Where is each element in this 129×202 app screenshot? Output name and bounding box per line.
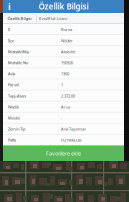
staticText: Favorilere ekle — [46, 150, 81, 157]
staticText: H21V06D2B — [61, 137, 82, 143]
staticText: İl — [8, 27, 10, 32]
button[interactable]: Bilgi — [3, 0, 16, 13]
staticText: Ada — [8, 71, 15, 76]
staticText: Mahalle No — [8, 60, 28, 65]
staticText: Mevkii — [8, 115, 20, 121]
staticText: Pafta — [8, 137, 16, 143]
staticText: 1360 — [61, 71, 69, 76]
button[interactable]: Favorilere ekle — [3, 146, 124, 161]
staticText: 1 — [61, 82, 63, 87]
staticText: Bursa — [61, 27, 72, 32]
staticText: İlçe — [8, 38, 14, 43]
staticText: Ana Taşınmaz — [61, 126, 86, 132]
button[interactable]: Bina/Blok Listesi — [36, 13, 69, 24]
button[interactable]: Özellik Bilgisi — [3, 13, 36, 24]
staticText: Tapu Alanı — [8, 93, 26, 98]
staticText: Parsel — [8, 82, 19, 87]
staticText: i — [8, 0, 11, 13]
staticText: Özellik Bilgisi — [38, 1, 88, 12]
staticText: 2.372,00 — [61, 93, 75, 98]
staticText: Özellik Bilgisi — [7, 16, 31, 21]
staticText: Nitelik — [8, 104, 19, 109]
staticText: Nilüfer — [61, 38, 73, 43]
staticText: - — [61, 115, 62, 121]
staticText: Zemin Tip — [8, 126, 25, 132]
staticText: Bina/Blok Listesi — [38, 16, 67, 21]
staticText: Arsa — [61, 104, 70, 109]
staticText: 150926 — [61, 60, 73, 65]
staticText: Ataevler — [61, 49, 76, 54]
staticText: Mahalle/Köy — [8, 49, 29, 54]
